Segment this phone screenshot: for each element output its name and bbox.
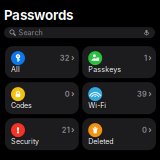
button[interactable]: Search [4, 27, 155, 38]
button[interactable]: 21 [5, 118, 79, 150]
staticText: Passwords [4, 7, 73, 23]
staticText: Passkeys [88, 65, 121, 74]
button[interactable]: 39 [82, 82, 156, 114]
button[interactable]: 0 [82, 118, 156, 150]
staticText: 39 [137, 90, 147, 99]
button[interactable]: 1 [82, 46, 156, 78]
staticText: Codes [11, 101, 32, 110]
staticText: All [11, 65, 20, 74]
button[interactable]: 32 [5, 46, 79, 78]
staticText: Deleted [88, 137, 113, 146]
button[interactable]: 0 [5, 82, 79, 114]
staticText: Search [18, 28, 42, 37]
staticText: Security [11, 137, 39, 146]
staticText: 32 [60, 54, 70, 63]
staticText: Wi-Fi [88, 101, 106, 110]
staticText: 1 [144, 54, 147, 63]
staticText: 21 [62, 126, 70, 135]
staticText: 0 [65, 90, 70, 99]
staticText: 0 [142, 126, 147, 135]
